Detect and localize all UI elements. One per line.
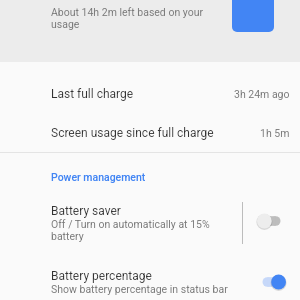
staticText: 3h 24m ago	[234, 88, 290, 100]
button[interactable]: Battery percentage	[0, 256, 300, 300]
staticText: Power management	[51, 171, 146, 183]
staticText: Screen usage since full charge	[51, 126, 214, 140]
button[interactable]: Screen usage since full charge	[0, 113, 300, 152]
button[interactable]: Turn off	[243, 256, 300, 300]
staticText: Show battery percentage in status bar	[51, 283, 236, 295]
button[interactable]: Battery saver	[0, 190, 300, 256]
button[interactable]: Last full charge	[0, 74, 300, 113]
staticText: Off / Turn on automatically at 15% batte…	[51, 218, 211, 242]
button[interactable]: Turn on	[243, 190, 300, 256]
staticText: 1h 5m	[260, 127, 290, 139]
staticText: Battery saver	[51, 204, 121, 218]
staticText: About 14h 2m left based on your usage	[51, 6, 209, 30]
staticText: Battery percentage	[51, 269, 152, 283]
staticText: Last full charge	[51, 87, 134, 101]
